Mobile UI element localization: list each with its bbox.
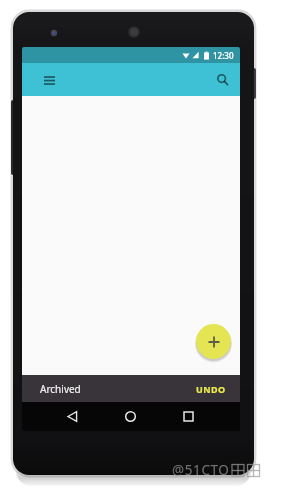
button[interactable] (39, 70, 59, 90)
button[interactable] (61, 405, 83, 427)
staticText: UNDO (196, 383, 226, 395)
staticText: @51CTO (172, 461, 230, 479)
button[interactable]: UNDO (196, 383, 226, 395)
staticText: Archived (40, 382, 81, 396)
button[interactable] (119, 405, 141, 427)
button[interactable] (196, 324, 231, 359)
button[interactable] (214, 71, 232, 89)
button[interactable] (177, 405, 199, 427)
staticText: 12:30 (213, 50, 234, 61)
